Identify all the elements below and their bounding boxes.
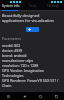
staticText: model: 802 (2, 43, 21, 48)
staticText: System info (2, 4, 20, 8)
staticText: brand: android (2, 53, 27, 58)
button[interactable]: Run test (26, 27, 39, 32)
staticText: Tests (29, 4, 37, 8)
staticText: Parameters (2, 36, 22, 41)
staticText: resolution: 720 x 1288 (2, 63, 39, 68)
button[interactable]: Back (16, 92, 32, 100)
button[interactable]: Settings (43, 3, 64, 11)
button[interactable]: Recents (48, 92, 64, 100)
button[interactable]: Home (32, 92, 48, 100)
staticText: device: 4938 (2, 48, 23, 53)
staticText: GPU Renderer: PowerVR SGX 531 / Chain (2, 78, 62, 88)
staticText: manufacturer: alps (2, 58, 34, 63)
button[interactable]: Menu (0, 92, 16, 100)
staticText: Settings (47, 4, 60, 8)
staticText: Beautifully designed applications for vi… (2, 13, 62, 23)
button[interactable]: System info (0, 3, 22, 11)
staticText: GPU Vendor: Imagination Technologies (2, 68, 62, 78)
button[interactable]: Tests (22, 3, 43, 11)
